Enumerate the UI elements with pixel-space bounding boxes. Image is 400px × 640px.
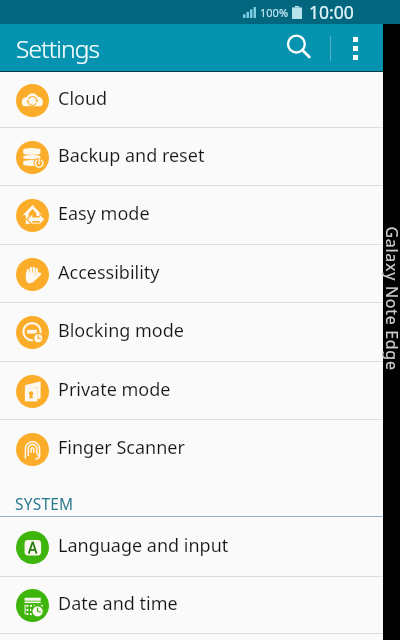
staticText: Private mode <box>58 377 171 402</box>
staticText: Cloud <box>58 86 108 111</box>
staticText: Finger Scanner <box>58 435 185 460</box>
button[interactable]: Search <box>275 24 323 72</box>
button[interactable]: Accessibility <box>0 245 400 303</box>
staticText: Accessibility <box>58 260 160 285</box>
button[interactable]: Cloud <box>0 72 400 128</box>
staticText: Language and input <box>58 533 229 558</box>
staticText: 100% <box>260 5 289 20</box>
staticText: Settings <box>16 32 275 65</box>
button[interactable]: Date and time <box>0 577 400 634</box>
staticText: SYSTEM <box>15 493 74 514</box>
button[interactable]: Backup and reset <box>0 128 400 186</box>
button[interactable]: Finger Scanner <box>0 420 400 478</box>
button[interactable]: Private mode <box>0 362 400 420</box>
staticText: Easy mode <box>58 201 150 226</box>
button[interactable]: Language and input <box>0 517 400 577</box>
staticText: 10:00 <box>309 0 354 24</box>
staticText: Blocking mode <box>58 318 184 343</box>
button[interactable]: Easy mode <box>0 186 400 245</box>
staticText: Date and time <box>58 591 178 616</box>
button[interactable]: More options <box>331 24 379 72</box>
staticText: Backup and reset <box>58 143 205 168</box>
button[interactable]: Blocking mode <box>0 303 400 362</box>
